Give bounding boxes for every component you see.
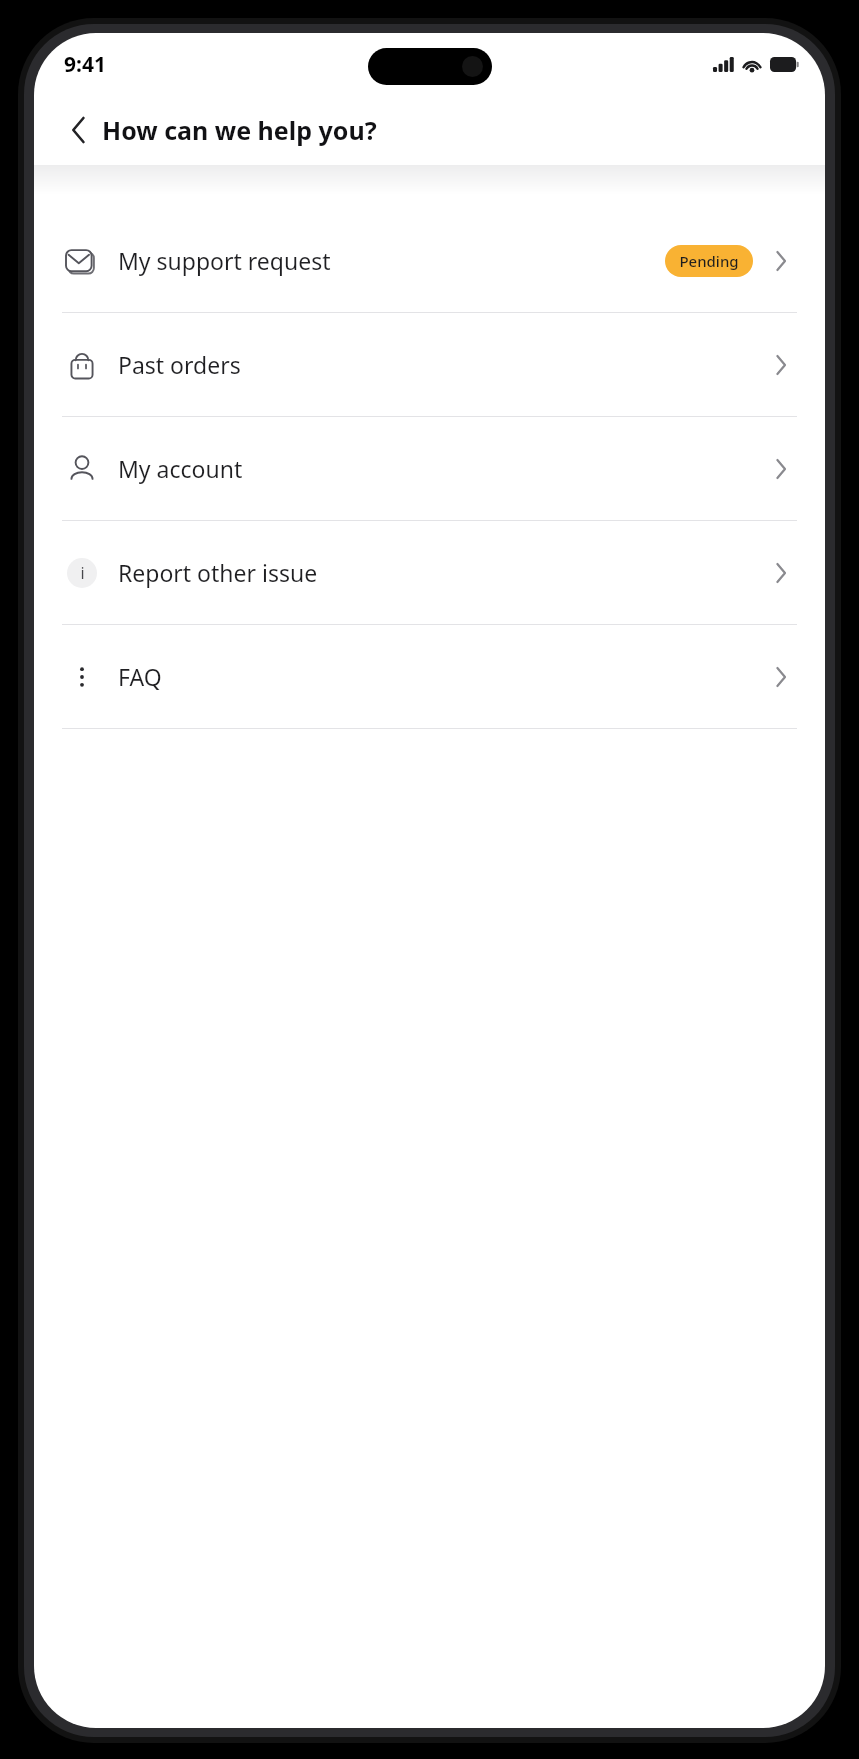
staticText: Pending — [679, 251, 739, 271]
staticText: i — [80, 562, 85, 584]
button[interactable]: FAQ — [34, 625, 825, 728]
other: Open My account — [767, 455, 795, 483]
staticText: How can we help you? — [102, 113, 377, 147]
button[interactable]: My account — [34, 417, 825, 520]
staticText: Report other issue — [118, 557, 767, 588]
button[interactable]: Past orders — [34, 313, 825, 416]
staticText: Past orders — [118, 349, 767, 380]
button[interactable]: i — [34, 521, 825, 624]
other: Open Report other issue — [767, 559, 795, 587]
button[interactable]: My support request — [34, 209, 825, 312]
staticText: 9:41 — [64, 50, 106, 79]
button[interactable]: Back — [56, 108, 100, 152]
staticText: FAQ — [118, 661, 767, 692]
staticText: My support request — [118, 245, 665, 276]
other: Open Support request — [767, 247, 795, 275]
staticText: My account — [118, 453, 767, 484]
other: Open FAQ — [767, 663, 795, 691]
other: Open Past orders — [767, 351, 795, 379]
